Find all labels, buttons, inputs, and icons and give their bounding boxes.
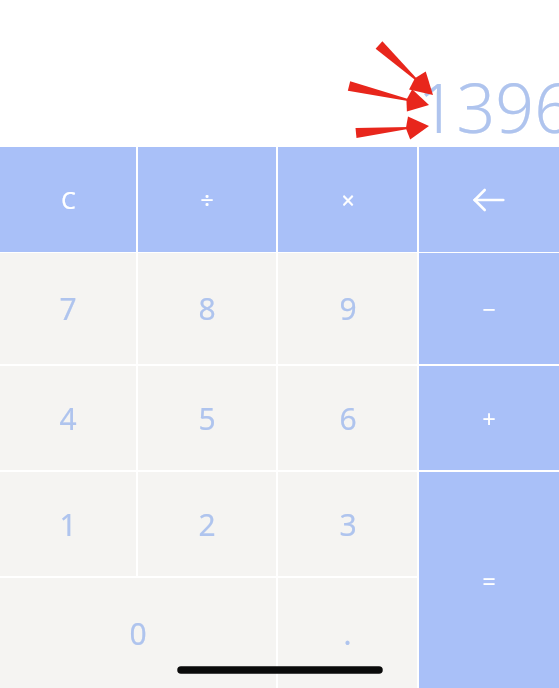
button[interactable]: 0 [0, 578, 276, 688]
staticText: 8 [198, 288, 216, 329]
button[interactable]: . [278, 578, 417, 688]
staticText: × [341, 184, 355, 215]
button[interactable]: Backspace [419, 147, 559, 252]
staticText: 2 [198, 504, 216, 545]
button[interactable]: 4 [0, 366, 136, 470]
staticText: 9 [339, 288, 357, 329]
button[interactable]: 6 [278, 366, 417, 470]
button[interactable]: 5 [138, 366, 276, 470]
staticText: . [343, 613, 352, 654]
staticText: + [482, 403, 496, 434]
staticText: 1 [59, 504, 77, 545]
button[interactable]: 1 [0, 472, 136, 576]
staticText: 5 [198, 398, 216, 439]
staticText: 4 [59, 398, 77, 439]
staticText: ÷ [200, 184, 214, 215]
staticText: 7 [59, 288, 77, 329]
staticText: 6 [339, 398, 357, 439]
button[interactable]: 8 [138, 253, 276, 364]
staticText: = [482, 565, 496, 596]
button[interactable]: 7 [0, 253, 136, 364]
staticText: 3 [339, 504, 357, 545]
staticText: 0 [129, 613, 147, 654]
staticText: 1396 [417, 60, 559, 147]
button[interactable]: 3 [278, 472, 417, 576]
button[interactable]: Plus [419, 366, 559, 470]
button[interactable]: 9 [278, 253, 417, 364]
staticText: C [61, 184, 76, 215]
button[interactable]: Divide [138, 147, 276, 252]
button[interactable]: Multiply [278, 147, 417, 252]
button[interactable]: C [0, 147, 136, 252]
staticText: − [482, 293, 496, 324]
button[interactable]: 2 [138, 472, 276, 576]
